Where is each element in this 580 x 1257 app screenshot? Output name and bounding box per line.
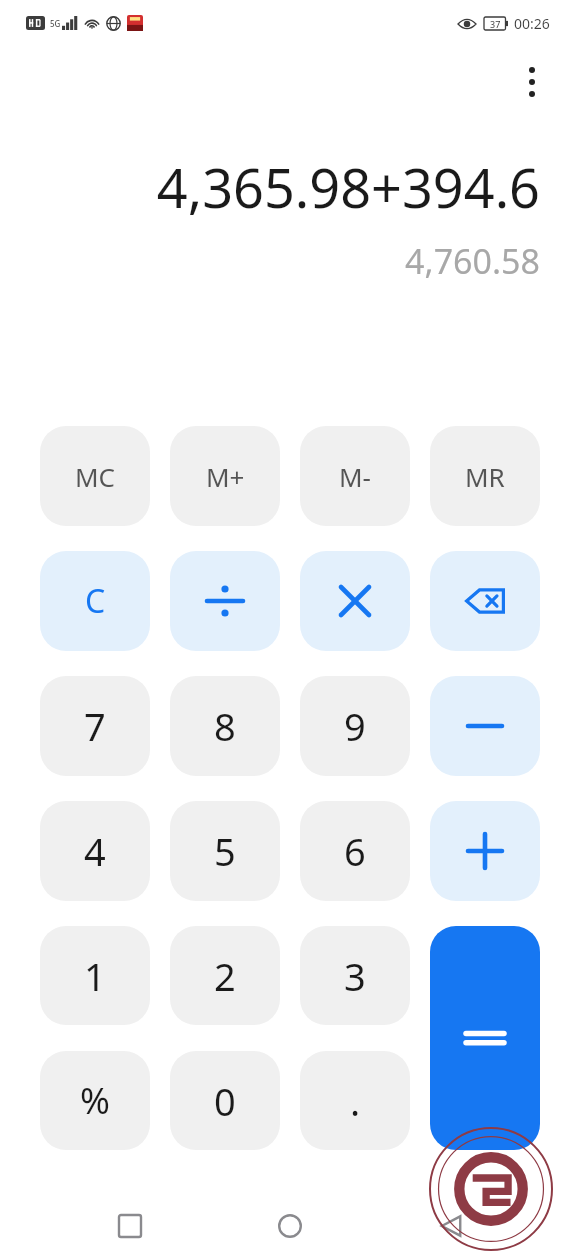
staticText: 2 xyxy=(214,950,236,1002)
button[interactable]: More options xyxy=(508,58,556,106)
staticText: 5 xyxy=(214,825,236,877)
staticText: 00:26 xyxy=(514,14,550,33)
button[interactable]: Back xyxy=(420,1195,482,1257)
button[interactable]: Plus xyxy=(430,801,540,901)
button[interactable]: 5 xyxy=(170,801,280,901)
staticText: MC xyxy=(75,459,116,494)
button[interactable]: 6 xyxy=(300,801,410,901)
button[interactable]: 3 xyxy=(300,926,410,1025)
button[interactable]: Recent apps xyxy=(99,1195,161,1257)
staticText: 7 xyxy=(84,700,106,752)
staticText: 4 xyxy=(84,825,106,877)
staticText: 5G xyxy=(50,18,61,29)
button[interactable]: 8 xyxy=(170,676,280,776)
button[interactable]: C xyxy=(40,551,150,651)
button[interactable]: 2 xyxy=(170,926,280,1025)
button[interactable]: M+ xyxy=(170,426,280,526)
staticText: 8 xyxy=(214,700,236,752)
button[interactable]: . xyxy=(300,1051,410,1150)
button[interactable]: Backspace xyxy=(430,551,540,651)
button[interactable]: MR xyxy=(430,426,540,526)
staticText: 4,365.98+394.6 xyxy=(156,150,540,224)
staticText: 6 xyxy=(344,825,366,877)
staticText: 9 xyxy=(344,700,366,752)
staticText: 37 xyxy=(490,18,501,30)
button[interactable]: M- xyxy=(300,426,410,526)
staticText: M+ xyxy=(206,459,245,494)
staticText: M- xyxy=(339,459,371,494)
staticText: C xyxy=(85,579,106,623)
staticText: 1 xyxy=(84,950,106,1002)
button[interactable]: 1 xyxy=(40,926,150,1025)
staticText: 0 xyxy=(214,1075,236,1127)
button[interactable]: % xyxy=(40,1051,150,1150)
button[interactable]: Home xyxy=(259,1195,321,1257)
button[interactable]: Multiply xyxy=(300,551,410,651)
button[interactable]: Equals xyxy=(430,926,540,1150)
staticText: MR xyxy=(465,459,505,494)
button[interactable]: 7 xyxy=(40,676,150,776)
staticText: 3 xyxy=(344,950,366,1002)
button[interactable]: 4 xyxy=(40,801,150,901)
button[interactable]: MC xyxy=(40,426,150,526)
button[interactable]: 9 xyxy=(300,676,410,776)
staticText: 4,760.58 xyxy=(405,238,540,284)
button[interactable]: 0 xyxy=(170,1051,280,1150)
button[interactable]: Minus xyxy=(430,676,540,776)
button[interactable]: Divide xyxy=(170,551,280,651)
staticText: . xyxy=(350,1075,361,1127)
staticText: % xyxy=(80,1076,110,1125)
